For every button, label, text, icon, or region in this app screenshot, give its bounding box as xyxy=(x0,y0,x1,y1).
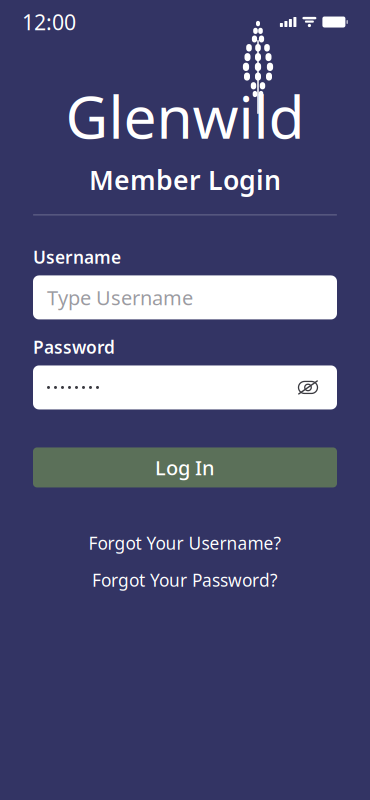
staticText: Username xyxy=(33,245,121,268)
staticText: Forgot Your Password? xyxy=(92,568,278,591)
staticText: Password xyxy=(33,335,115,358)
button[interactable]: Log In xyxy=(33,447,337,487)
staticText: Member Login xyxy=(89,162,281,197)
button[interactable]: Show password xyxy=(293,372,323,402)
staticText: Forgot Your Username? xyxy=(88,531,281,554)
button[interactable]: Forgot Your Username? xyxy=(80,529,289,556)
staticText: Log In xyxy=(155,454,215,481)
staticText: 12:00 xyxy=(22,8,76,36)
staticText: Glenwild xyxy=(65,76,304,156)
button[interactable]: Forgot Your Password? xyxy=(84,566,286,593)
staticText: Type Username xyxy=(47,284,193,311)
